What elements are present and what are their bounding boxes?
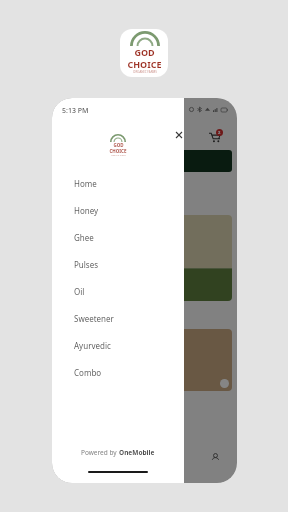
staticText: ORGANIC FARMS [133,70,157,74]
staticText: Ayurvedic [74,340,111,351]
staticText: Home [74,178,97,189]
staticText: OneMobile [119,448,155,457]
button[interactable]: Ghee [88,180,108,209]
button[interactable]: Cart [197,124,231,150]
staticText: 2 [218,130,221,135]
button[interactable]: Honey [58,180,78,209]
staticText: Sweetener [74,313,114,324]
button[interactable]: Combo [52,359,184,386]
button[interactable]: Honey [52,197,184,224]
other: Favourite [220,379,229,388]
staticText: GOD [113,142,124,148]
button[interactable]: Home [52,170,184,197]
staticText: Honey [74,205,99,216]
button[interactable]: Ghee [52,224,184,251]
button[interactable]: Account [207,449,223,465]
staticText: CHOICE [109,148,127,154]
staticText: Honey [60,202,76,209]
staticText: Combo [74,367,102,378]
staticText: 5:13 PM [62,106,89,116]
staticText: Pulses [74,259,99,270]
button[interactable]: Close menu [170,126,188,144]
button[interactable]: Oil [52,278,184,305]
staticText: Ghee [74,232,94,243]
button[interactable]: Pulses [52,251,184,278]
button[interactable]: Favourite [57,329,232,391]
staticText: Oil [74,286,85,297]
staticText: CHOICE [127,58,162,70]
button[interactable]: Sweetener [52,305,184,332]
staticText: Powered by [81,448,119,457]
button[interactable]: God Choice app icon [120,29,168,77]
button[interactable]: Ayurvedic [52,332,184,359]
staticText: GOD [134,46,155,58]
staticText: ORGANIC FARMS [111,154,126,156]
